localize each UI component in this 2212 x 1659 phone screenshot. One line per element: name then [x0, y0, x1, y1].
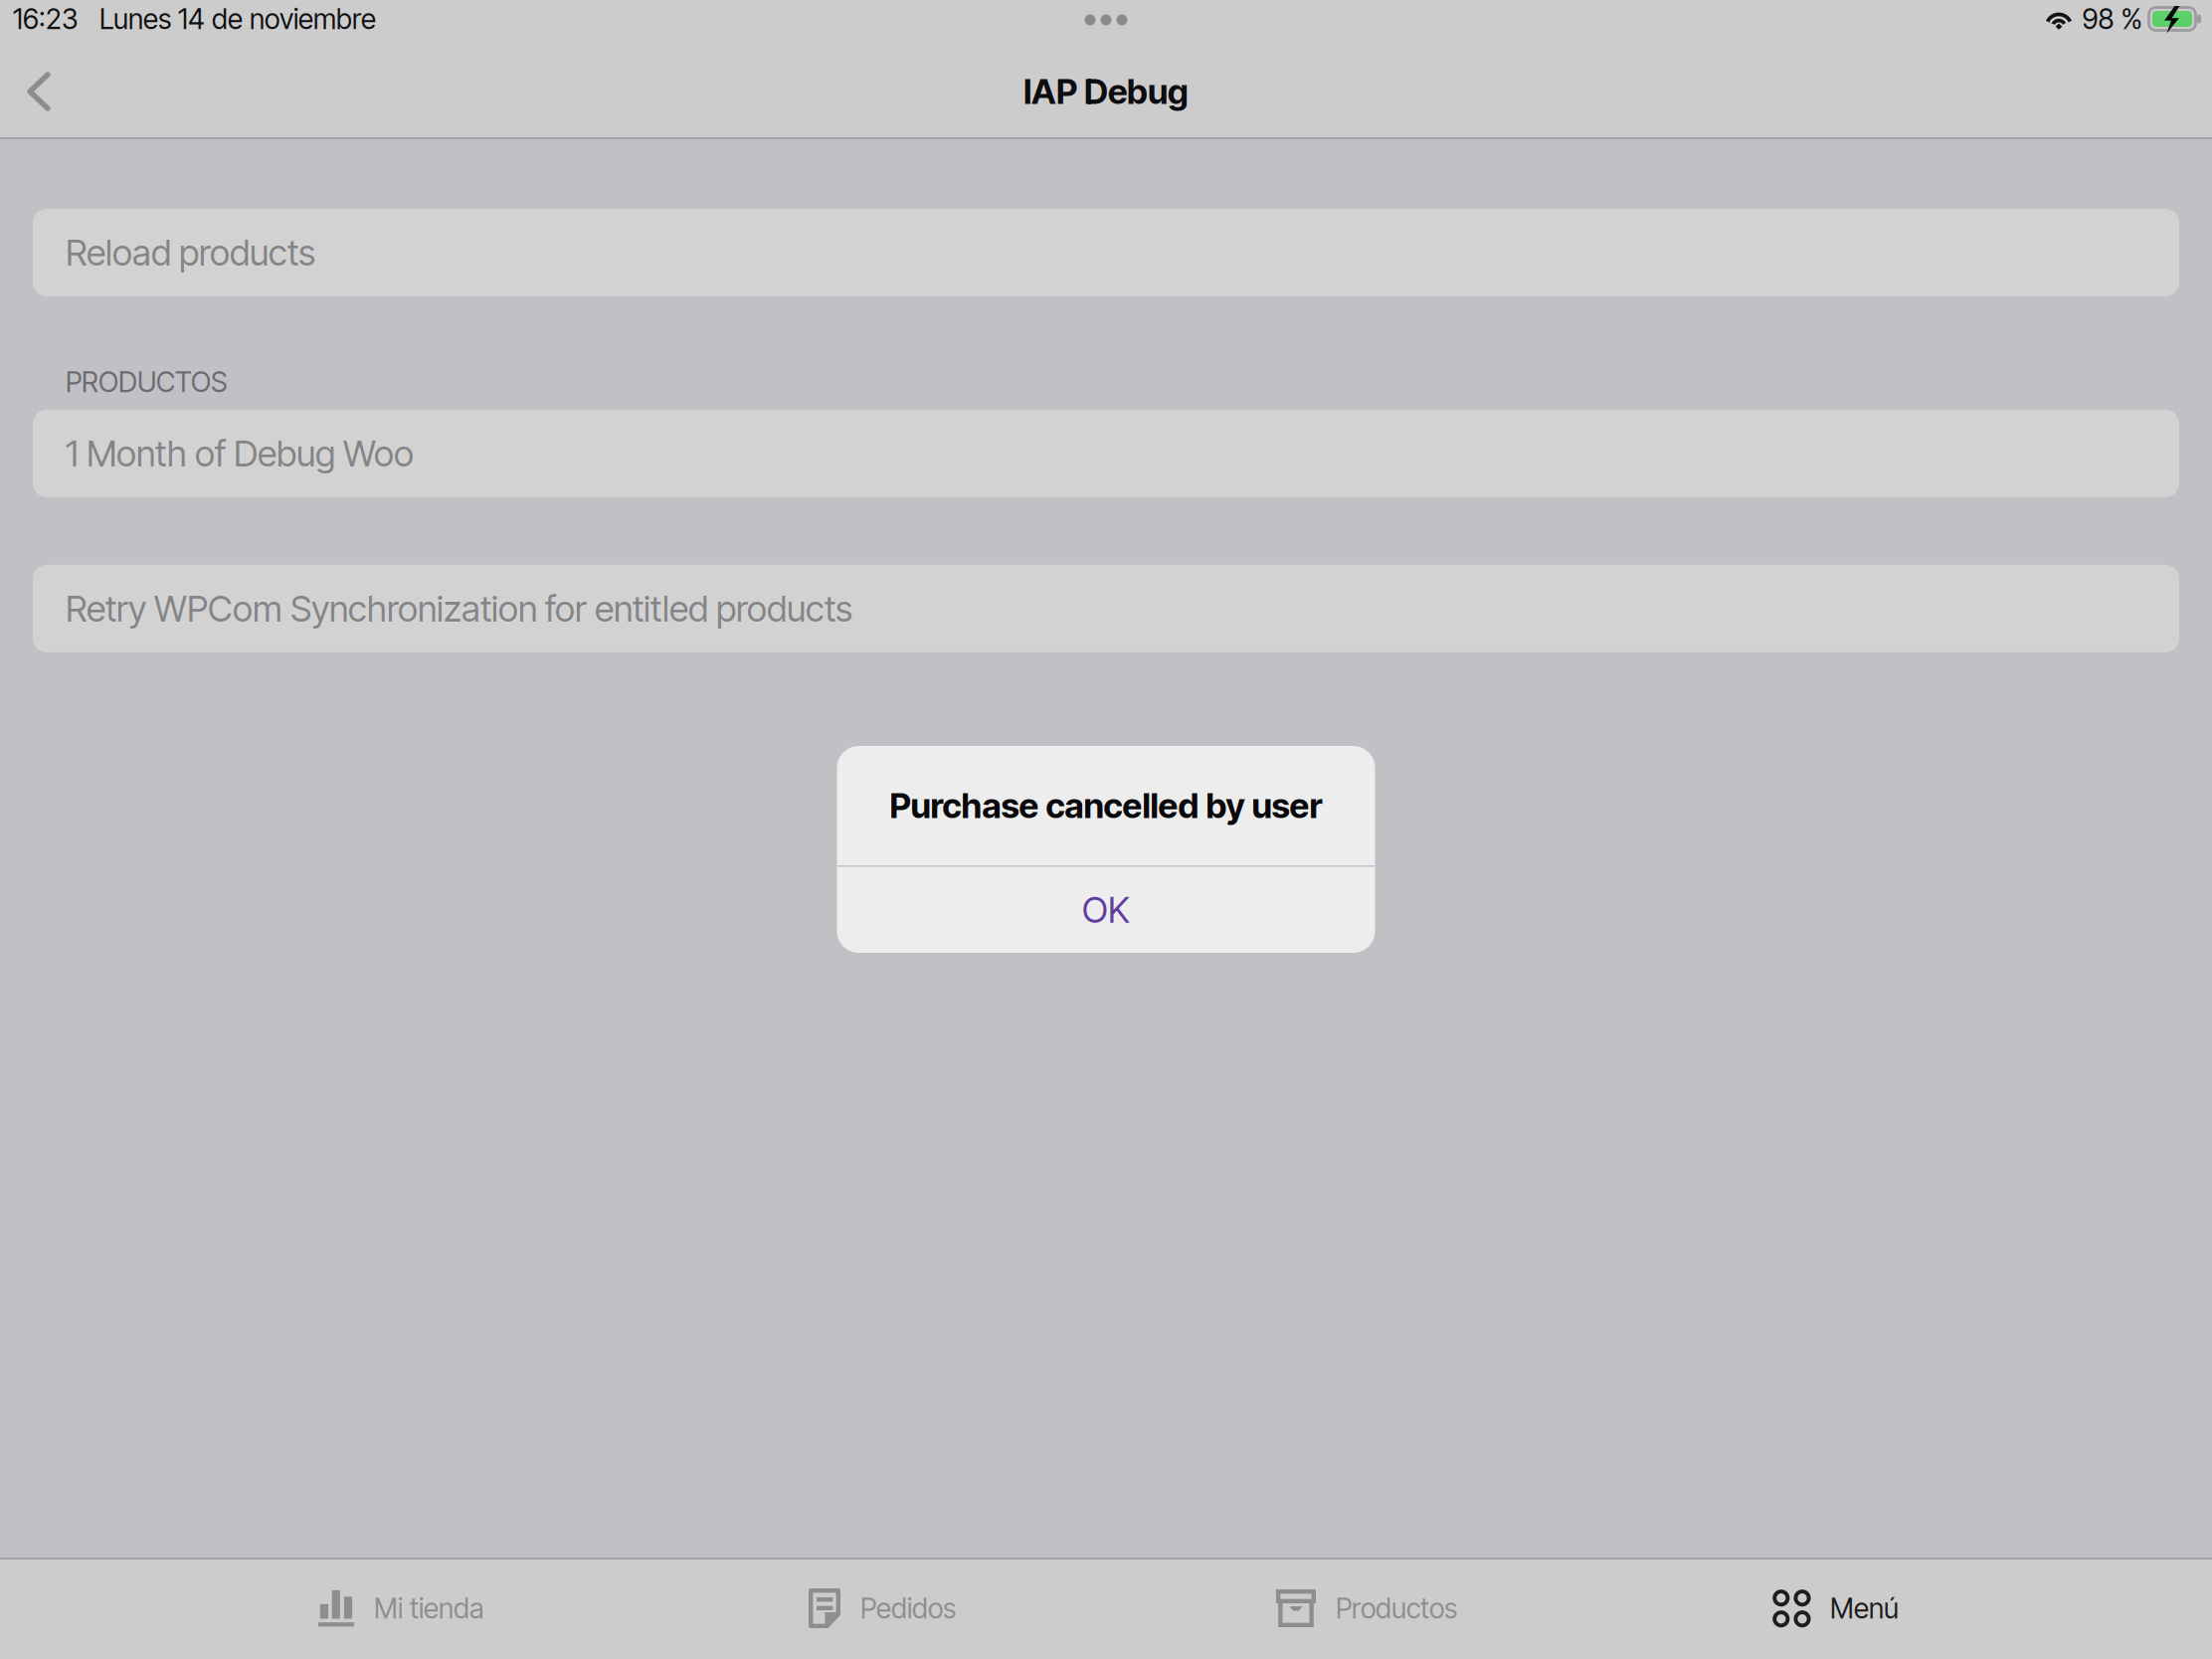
staticText: Mi tienda [374, 1591, 483, 1625]
button[interactable]: Menú [1772, 1571, 1899, 1646]
button[interactable]: Back [15, 73, 63, 110]
button[interactable]: Retry WPCom Synchronization for entitled… [33, 565, 2179, 652]
staticText: Productos [1336, 1591, 1457, 1625]
button[interactable]: Productos [1276, 1571, 1457, 1645]
staticText: Reload products [66, 231, 315, 274]
button[interactable]: 1 Month of Debug Woo [33, 410, 2179, 497]
staticText: PRODUCTOS [66, 365, 228, 399]
staticText: 1 Month of Debug Woo [66, 432, 414, 475]
staticText: 98 % [2082, 2, 2142, 36]
staticText: Menú [1830, 1591, 1899, 1625]
staticText: OK [1082, 888, 1130, 932]
staticText: Lunes 14 de noviembre [99, 2, 376, 36]
button[interactable]: OK [837, 867, 1375, 953]
staticText: 16:23 [13, 2, 79, 36]
button[interactable]: Reload products [33, 209, 2179, 296]
staticText: IAP Debug [1023, 71, 1189, 112]
staticText: Pedidos [860, 1591, 956, 1625]
button[interactable]: Pedidos [809, 1570, 956, 1646]
staticText: Purchase cancelled by user [890, 785, 1322, 826]
staticText: Retry WPCom Synchronization for entitled… [66, 587, 852, 630]
button[interactable]: Mi tienda [318, 1572, 483, 1645]
